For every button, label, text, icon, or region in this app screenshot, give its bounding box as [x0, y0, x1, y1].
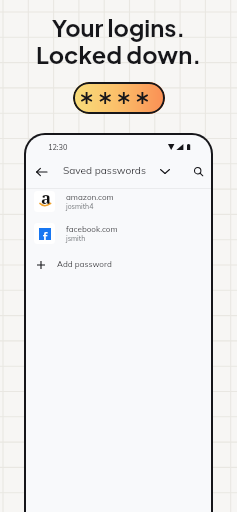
button[interactable] [73, 82, 165, 114]
staticText: f [43, 229, 48, 241]
staticText: facebook.com [66, 224, 118, 234]
staticText: a [41, 191, 52, 207]
button[interactable]: a [26, 189, 211, 221]
staticText: 12:30 [48, 143, 68, 152]
button[interactable]: Filter list [155, 162, 174, 181]
staticText: jsmith [66, 234, 86, 243]
button[interactable]: Search [189, 162, 208, 181]
staticText: amazon.com [66, 192, 114, 202]
button[interactable]: Back [31, 162, 51, 182]
staticText: Saved passwords [63, 164, 146, 177]
button[interactable]: f [26, 221, 211, 253]
staticText: josmith4 [66, 202, 94, 211]
button[interactable]: Add password [26, 253, 211, 283]
staticText: Add password [57, 259, 112, 269]
staticText: Your logins. Locked down. [0, 13, 237, 69]
